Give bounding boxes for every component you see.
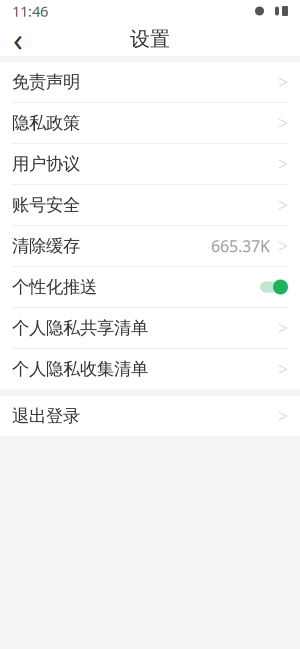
staticText: 退出登录 — [12, 405, 80, 427]
staticText: 用户协议 — [12, 153, 80, 175]
staticText: > — [278, 111, 288, 134]
staticText: > — [278, 70, 288, 93]
staticText: ‹ — [13, 18, 23, 60]
button[interactable]: 用户协议 — [0, 144, 300, 184]
staticText: > — [278, 193, 288, 216]
button[interactable]: 个性化推送 — [0, 267, 300, 307]
staticText: 设置 — [130, 27, 170, 51]
staticText: 665.37K — [211, 235, 270, 257]
button[interactable]: 个人隐私收集清单 — [0, 349, 300, 389]
staticText: > — [278, 152, 288, 175]
staticText: > — [278, 404, 288, 427]
staticText: > — [278, 316, 288, 339]
button[interactable]: 隐私政策 — [0, 103, 300, 143]
staticText: 清除缓存 — [12, 235, 80, 257]
staticText: 个性化推送 — [12, 276, 97, 298]
button[interactable]: 个人隐私共享清单 — [0, 308, 300, 348]
staticText: 个人隐私收集清单 — [12, 358, 148, 380]
staticText: 11:46 — [12, 1, 48, 21]
button[interactable]: 免责声明 — [0, 62, 300, 102]
button[interactable]: 账号安全 — [0, 185, 300, 225]
staticText: > — [278, 357, 288, 380]
staticText: 账号安全 — [12, 194, 80, 216]
button[interactable]: 退出登录 — [0, 396, 300, 436]
button[interactable]: 清除缓存 — [0, 226, 300, 266]
staticText: 免责声明 — [12, 71, 80, 93]
staticText: > — [278, 234, 288, 257]
staticText: 隐私政策 — [12, 112, 80, 134]
staticText: 个人隐私共享清单 — [12, 317, 148, 339]
button[interactable]: Back — [0, 22, 36, 56]
